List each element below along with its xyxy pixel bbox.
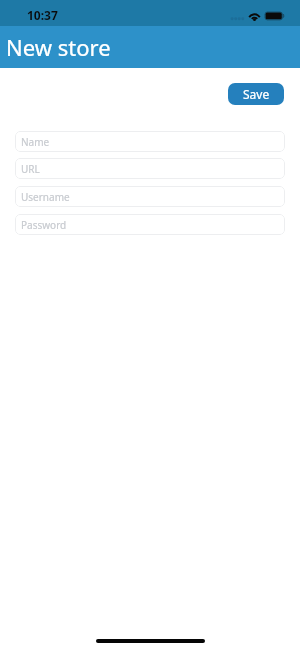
other: Battery full bbox=[265, 12, 284, 21]
other: Wi-Fi bbox=[248, 12, 261, 21]
button[interactable]: Password bbox=[15, 214, 285, 235]
button[interactable]: Username bbox=[15, 186, 285, 207]
staticText: Save bbox=[243, 86, 270, 102]
staticText: Password bbox=[21, 218, 67, 232]
staticText: New store bbox=[6, 32, 111, 62]
staticText: Username bbox=[21, 190, 70, 204]
button[interactable]: Name bbox=[15, 131, 285, 152]
button[interactable]: URL bbox=[15, 158, 285, 179]
staticText: Name bbox=[21, 135, 50, 149]
other: Cellular signal bbox=[229, 12, 242, 21]
staticText: URL bbox=[21, 162, 40, 176]
staticText: 10:37 bbox=[27, 7, 58, 23]
button[interactable]: Save bbox=[228, 83, 284, 105]
